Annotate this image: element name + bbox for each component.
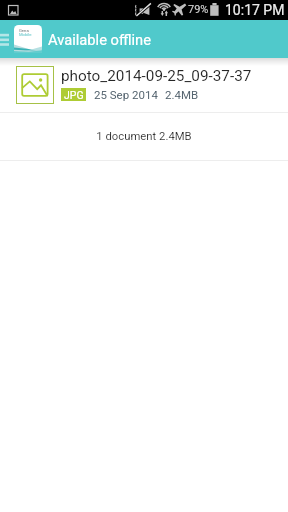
button[interactable]: Open navigation drawer [0, 20, 14, 58]
staticText: Available offline [48, 31, 151, 48]
staticText: Mobile [19, 32, 32, 37]
staticText: 25 Sep 2014 [94, 88, 158, 101]
staticText: 10:17 PM [225, 2, 285, 18]
staticText: JPG [64, 89, 84, 101]
staticText: Gena [19, 28, 29, 33]
staticText: 79% [188, 3, 209, 16]
staticText: 2.4MB [165, 88, 199, 101]
button[interactable]: photo_2014-09-25_09-37-37 [0, 58, 288, 112]
staticText: photo_2014-09-25_09-37-37 [61, 67, 252, 85]
staticText: 1 document 2.4MB [96, 130, 192, 143]
